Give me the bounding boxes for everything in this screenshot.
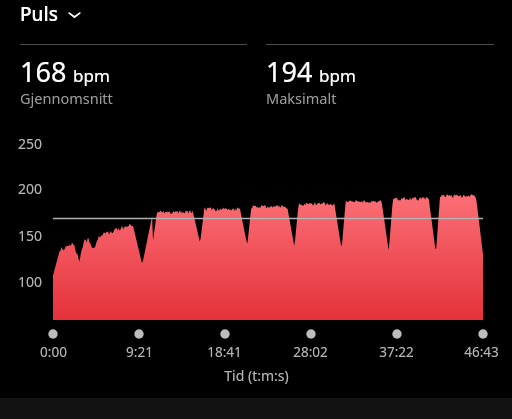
staticText: 18:41	[207, 343, 242, 361]
staticText: Maksimalt	[266, 88, 337, 108]
staticText: bpm	[319, 64, 356, 87]
staticText: 250	[18, 134, 43, 153]
staticText: 9:21	[126, 343, 153, 361]
staticText: 194	[266, 53, 313, 90]
staticText: 150	[18, 226, 43, 245]
staticText: Tid (t:m:s)	[224, 366, 289, 385]
staticText: 168	[20, 53, 67, 90]
button[interactable]: 168	[20, 40, 247, 108]
staticText: Gjennomsnitt	[20, 88, 113, 108]
staticText: 37:22	[379, 343, 414, 361]
staticText: 200	[18, 179, 43, 198]
button[interactable]: 194	[266, 40, 494, 108]
staticText: 46:43	[464, 343, 499, 361]
staticText: bpm	[73, 64, 110, 87]
button[interactable]: Puls, change metric	[20, 1, 82, 27]
staticText: Puls	[20, 1, 58, 27]
staticText: 28:02	[293, 343, 328, 361]
staticText: 0:00	[40, 343, 67, 361]
staticText: 100	[18, 272, 43, 291]
